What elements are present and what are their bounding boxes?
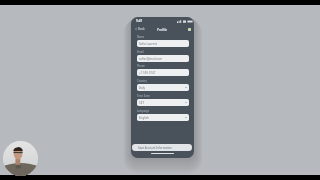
- staticText: CET: [139, 101, 145, 105]
- button[interactable]: +1 555 0147: [137, 69, 189, 76]
- button[interactable]: Back: [134, 26, 146, 32]
- staticText: Country: [137, 79, 147, 83]
- staticText: sofia.l@mail.com: [139, 57, 163, 61]
- button[interactable]: Sofia Laurent: [137, 40, 189, 47]
- staticText: Sofia Laurent: [139, 42, 157, 46]
- button[interactable]: sofia.l@mail.com: [137, 55, 189, 62]
- button[interactable]: Profile photo: [3, 141, 38, 176]
- staticText: 9:41: [136, 19, 143, 23]
- staticText: Name: [137, 35, 145, 39]
- staticText: Email: [137, 50, 144, 54]
- staticText: Language: [137, 109, 150, 113]
- button[interactable]: Edit: [188, 28, 191, 31]
- staticText: Italy: [139, 86, 145, 90]
- button[interactable]: Save Account Information: [132, 144, 192, 151]
- staticText: Profile: [157, 27, 168, 31]
- staticText: Save Account Information: [138, 146, 173, 150]
- button[interactable]: CET: [137, 99, 189, 106]
- button[interactable]: English: [137, 114, 189, 121]
- button[interactable]: Italy: [137, 84, 189, 91]
- staticText: Back: [138, 27, 145, 31]
- staticText: Phone: [137, 64, 145, 68]
- staticText: English: [139, 116, 149, 120]
- staticText: +1 555 0147: [139, 71, 156, 75]
- staticText: Time Zone: [137, 94, 150, 98]
